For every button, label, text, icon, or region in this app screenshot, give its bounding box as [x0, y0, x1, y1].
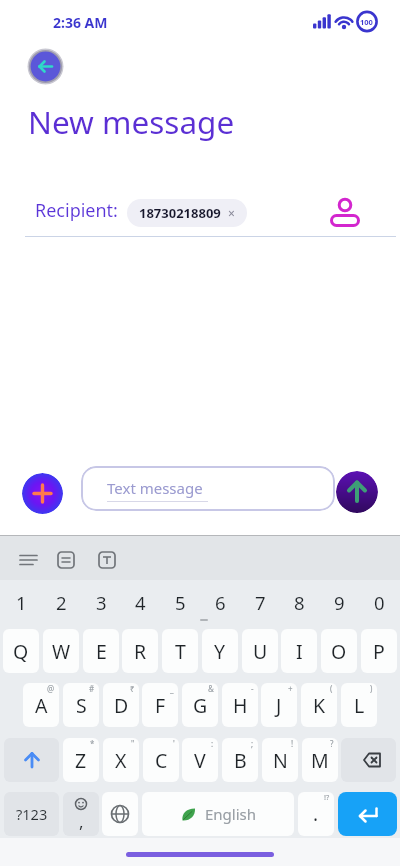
button[interactable]: Text message	[81, 466, 335, 511]
button[interactable]: X	[103, 738, 139, 782]
staticText: 9	[334, 590, 345, 615]
button[interactable]: W	[43, 629, 79, 673]
button[interactable]: Q	[3, 629, 39, 673]
button[interactable]: Y	[202, 629, 238, 673]
button[interactable]	[22, 473, 63, 514]
button[interactable]: 7	[242, 589, 278, 615]
button[interactable]	[102, 792, 138, 836]
staticText: 5	[175, 590, 186, 615]
staticText: ;	[251, 738, 254, 749]
staticText: English	[205, 804, 257, 824]
button[interactable]: English	[142, 792, 294, 836]
button[interactable]: P	[361, 629, 397, 673]
staticText: )	[370, 683, 373, 694]
staticText: T	[175, 638, 186, 665]
staticText: U	[253, 638, 268, 665]
button[interactable]	[338, 792, 397, 836]
button[interactable]: 4	[122, 589, 158, 615]
staticText: ×	[228, 205, 235, 221]
button[interactable]: D	[103, 683, 139, 727]
staticText: O	[331, 638, 347, 665]
button[interactable]: .	[298, 792, 334, 836]
button[interactable]: 3	[83, 589, 119, 615]
button[interactable]: A	[23, 683, 59, 727]
button[interactable]: U	[242, 629, 278, 673]
button[interactable]: Z	[63, 738, 99, 782]
staticText: X	[115, 747, 127, 774]
button[interactable]	[341, 738, 396, 782]
staticText: .	[313, 801, 319, 827]
staticText: B	[234, 747, 247, 774]
button[interactable]: 5	[162, 589, 198, 615]
staticText: G	[193, 692, 208, 719]
staticText: 6	[215, 590, 226, 615]
button[interactable]: B	[222, 738, 258, 782]
staticText: K	[313, 692, 326, 719]
button[interactable]: 9	[321, 589, 357, 615]
staticText: (	[330, 683, 333, 694]
staticText: 8	[294, 590, 305, 615]
button[interactable]: C	[143, 738, 179, 782]
staticText: ₹	[130, 683, 135, 694]
button[interactable]: R	[122, 629, 158, 673]
staticText: @	[47, 683, 55, 694]
staticText: H	[233, 692, 248, 719]
button[interactable]: ,	[63, 792, 99, 836]
staticText: 3	[96, 590, 107, 615]
button[interactable]: J	[261, 683, 297, 727]
button[interactable]: T	[162, 629, 198, 673]
staticText: S	[76, 692, 87, 719]
staticText: _	[170, 683, 174, 694]
staticText: +	[288, 683, 293, 694]
button[interactable]: S	[63, 683, 99, 727]
button[interactable]: 6	[202, 589, 238, 615]
button[interactable]: 2	[43, 589, 79, 615]
staticText: Z	[75, 747, 87, 774]
staticText: I	[296, 638, 303, 665]
staticText: R	[134, 638, 147, 665]
staticText: P	[373, 638, 385, 665]
staticText: D	[114, 692, 129, 719]
button[interactable]: 0	[361, 589, 397, 615]
staticText: E	[96, 638, 107, 665]
staticText: 7	[255, 590, 266, 615]
button[interactable]: ?123	[4, 792, 59, 836]
button[interactable]: H	[222, 683, 258, 727]
staticText: ,	[79, 810, 84, 833]
button[interactable]: 1	[3, 589, 39, 615]
button[interactable]: V	[182, 738, 218, 782]
button[interactable]: N	[262, 738, 298, 782]
staticText: #	[89, 683, 95, 694]
staticText: 1	[16, 590, 27, 615]
button[interactable]	[328, 196, 362, 230]
staticText: W	[52, 638, 71, 665]
button[interactable]	[336, 471, 378, 513]
button[interactable]: I	[281, 629, 317, 673]
button[interactable]: M	[302, 738, 338, 782]
button[interactable]: O	[321, 629, 357, 673]
staticText: '	[173, 738, 175, 749]
staticText: &	[208, 683, 214, 694]
staticText: !	[291, 738, 294, 749]
button[interactable]: K	[301, 683, 337, 727]
button[interactable]: L	[341, 683, 377, 727]
staticText: Y	[214, 638, 226, 665]
staticText: ?	[330, 738, 334, 749]
staticText: :	[211, 738, 214, 749]
button[interactable]	[4, 738, 59, 782]
staticText: Text message	[107, 478, 203, 498]
button[interactable]	[27, 48, 64, 85]
staticText: L	[354, 692, 365, 719]
staticText: "	[131, 738, 135, 749]
staticText: 2:36 AM	[53, 13, 108, 32]
staticText: C	[155, 747, 168, 774]
staticText: V	[194, 747, 206, 774]
staticText: F	[155, 692, 166, 719]
button[interactable]: G	[182, 683, 218, 727]
button[interactable]: 18730218809	[127, 199, 247, 227]
staticText: J	[276, 692, 282, 719]
button[interactable]: F	[142, 683, 178, 727]
button[interactable]: 8	[281, 589, 317, 615]
staticText: 100	[360, 17, 373, 27]
button[interactable]: E	[83, 629, 119, 673]
